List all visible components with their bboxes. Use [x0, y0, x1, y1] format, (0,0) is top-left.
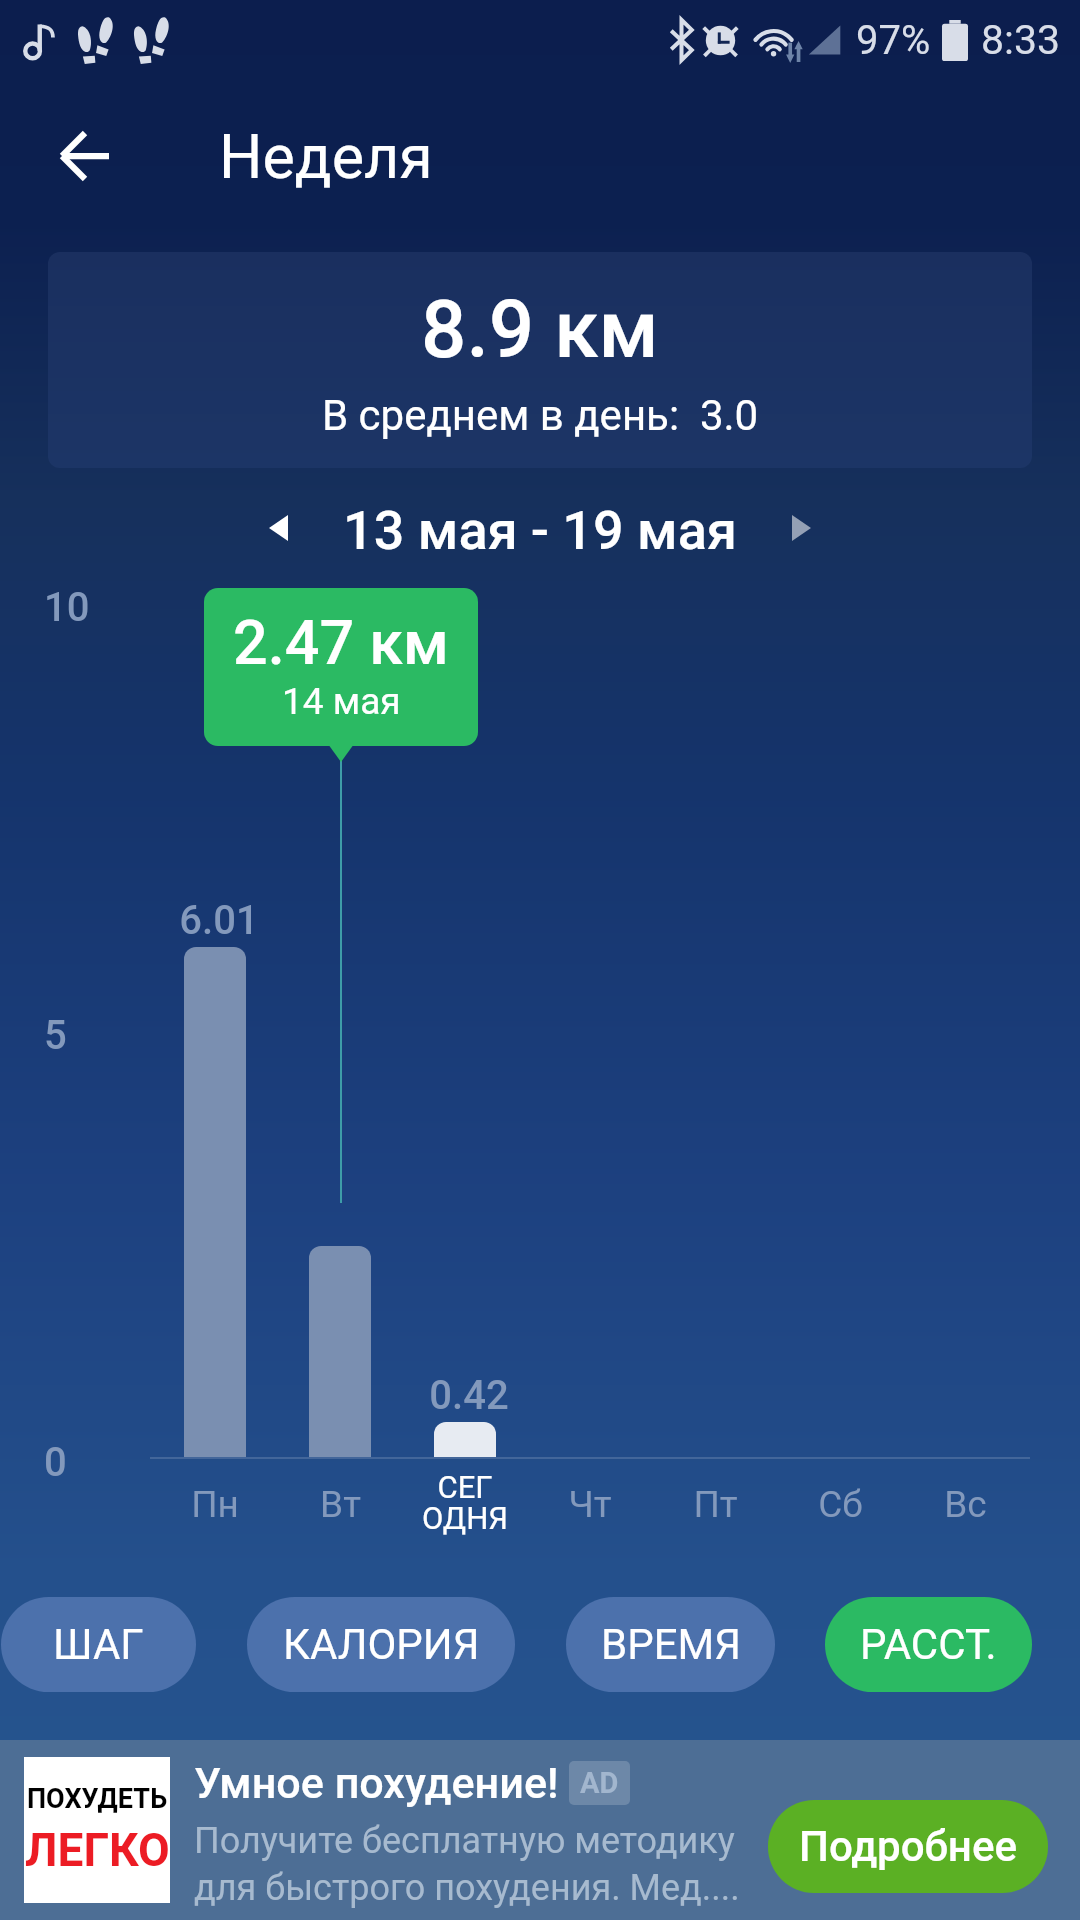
staticText: КАЛОРИЯ — [283, 1620, 480, 1669]
button[interactable]: РАССТ. — [825, 1597, 1032, 1692]
button[interactable]: Back — [36, 108, 132, 204]
staticText: ПОХУДЕТЬ — [27, 1783, 168, 1815]
staticText: Подробнее — [799, 1822, 1017, 1871]
staticText: 8:33 — [981, 16, 1061, 64]
staticText: 97% — [856, 17, 931, 64]
button[interactable]: Вт — [278, 1483, 402, 1543]
button[interactable]: Next week — [767, 492, 843, 568]
button[interactable] — [184, 947, 246, 1457]
button[interactable] — [434, 1422, 496, 1457]
button[interactable]: Чт — [528, 1483, 652, 1543]
staticText: РАССТ. — [860, 1620, 997, 1669]
button[interactable]: Сб — [778, 1483, 902, 1543]
button[interactable]: Пн — [153, 1483, 277, 1543]
button[interactable]: Подробнее — [768, 1800, 1048, 1893]
staticText: СЕГ ОДНЯ — [422, 1469, 508, 1537]
staticText: 0 — [44, 1439, 67, 1486]
button[interactable]: Previous week — [237, 492, 313, 568]
staticText: 2.47 км — [233, 607, 449, 678]
staticText: Чт — [568, 1483, 612, 1526]
button[interactable]: ШАГ — [1, 1597, 196, 1692]
staticText: В среднем в день: 3.0 — [322, 391, 759, 440]
staticText: AD — [580, 1766, 619, 1800]
staticText: ШАГ — [53, 1620, 144, 1669]
staticText: Сб — [818, 1483, 863, 1526]
staticText: Пн — [191, 1483, 239, 1526]
button[interactable]: КАЛОРИЯ — [247, 1597, 515, 1692]
staticText: 5 — [44, 1012, 67, 1059]
button[interactable]: 8.9 км — [48, 252, 1032, 468]
button[interactable]: Пт — [653, 1483, 777, 1543]
staticText: Получите бесплатную методику для быстрог… — [194, 1820, 740, 1909]
staticText: Пт — [693, 1483, 738, 1526]
staticText: Вс — [944, 1483, 987, 1526]
staticText: 8.9 км — [421, 283, 659, 377]
button[interactable]: ПОХУДЕТЬ — [0, 1740, 1080, 1920]
staticText: ЛЕГКО — [25, 1823, 170, 1877]
staticText: 14 мая — [282, 680, 401, 723]
staticText: Неделя — [219, 121, 433, 192]
staticText: Вт — [320, 1483, 361, 1526]
button[interactable]: ВРЕМЯ — [566, 1597, 775, 1692]
staticText: ВРЕМЯ — [601, 1620, 741, 1669]
button[interactable]: Вс — [903, 1483, 1027, 1543]
staticText: 13 мая - 19 мая — [343, 499, 737, 562]
staticText: 10 — [44, 584, 90, 631]
staticText: 6.01 — [179, 897, 259, 944]
staticText: 0.42 — [429, 1372, 509, 1419]
staticText: Умное похудение! — [194, 1758, 559, 1808]
button[interactable]: СЕГ ОДНЯ — [390, 1469, 540, 1559]
button[interactable]: 2.47 км — [204, 588, 478, 746]
button[interactable] — [309, 1246, 371, 1457]
